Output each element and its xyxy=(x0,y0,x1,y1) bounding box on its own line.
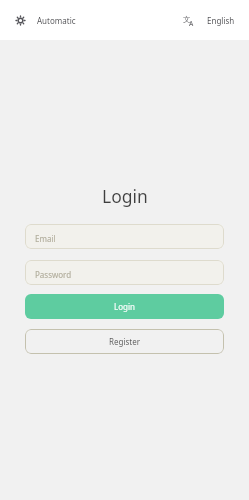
button[interactable]: Password xyxy=(25,260,224,285)
staticText: 文 xyxy=(183,15,191,24)
staticText: Password xyxy=(35,269,72,280)
staticText: Login xyxy=(114,301,135,312)
staticText: Register xyxy=(109,336,141,347)
other: Theme xyxy=(16,16,25,25)
button[interactable]: Language xyxy=(171,7,249,34)
button[interactable]: Register xyxy=(25,329,224,354)
staticText: A xyxy=(189,19,194,28)
other: Language xyxy=(183,16,193,26)
staticText: English xyxy=(207,15,235,26)
button[interactable]: Theme xyxy=(0,7,88,34)
staticText: Email xyxy=(35,233,56,244)
button[interactable]: Login xyxy=(25,294,224,319)
staticText: Login xyxy=(102,184,148,208)
button[interactable]: Email xyxy=(25,224,224,249)
staticText: Automatic xyxy=(37,15,76,26)
